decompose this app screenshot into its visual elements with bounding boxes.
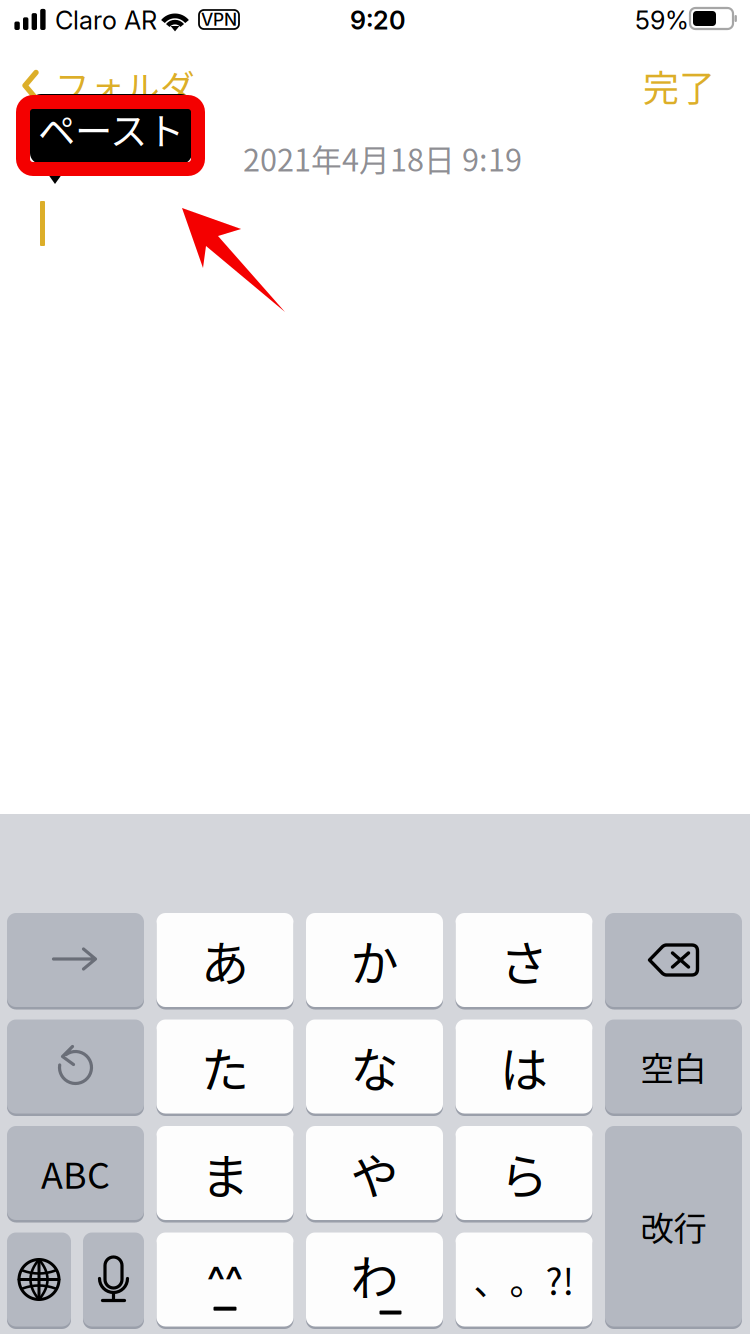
staticText: あ bbox=[201, 925, 249, 995]
staticText: フォルダ bbox=[55, 61, 195, 111]
button[interactable]: ^^ bbox=[156, 1232, 293, 1329]
button[interactable] bbox=[605, 913, 742, 1010]
staticText: さ bbox=[500, 925, 548, 995]
button[interactable]: 空白 bbox=[605, 1019, 742, 1116]
staticText: 空白 bbox=[640, 1042, 706, 1091]
button[interactable]: あ bbox=[156, 913, 293, 1010]
staticText: か bbox=[350, 925, 398, 995]
button[interactable]: な bbox=[306, 1019, 443, 1116]
button[interactable]: や bbox=[306, 1126, 443, 1223]
button[interactable]: ABC bbox=[7, 1126, 144, 1223]
staticText: ペースト bbox=[38, 102, 184, 156]
staticText: 9:20 bbox=[350, 5, 406, 36]
staticText: Claro AR bbox=[55, 5, 157, 36]
staticText: な bbox=[350, 1032, 398, 1101]
button[interactable] bbox=[7, 913, 144, 1010]
staticText: 改行 bbox=[640, 1202, 706, 1250]
staticText: は bbox=[500, 1032, 548, 1101]
button[interactable]: 改行 bbox=[605, 1126, 742, 1329]
button[interactable]: 、。?! bbox=[455, 1232, 592, 1329]
button[interactable] bbox=[7, 1019, 144, 1116]
button[interactable]: ら bbox=[455, 1126, 592, 1223]
staticText: VPN bbox=[201, 9, 237, 30]
button[interactable] bbox=[7, 1232, 71, 1329]
staticText: や bbox=[350, 1138, 398, 1208]
button[interactable]: ま bbox=[156, 1126, 293, 1223]
staticText: 59% bbox=[635, 5, 689, 36]
button[interactable]: は bbox=[455, 1019, 592, 1116]
staticText: 2021年4月18日 9:19 bbox=[243, 136, 522, 180]
button[interactable]: さ bbox=[455, 913, 592, 1010]
button[interactable]: ペースト bbox=[30, 94, 192, 164]
staticText: ABC bbox=[41, 1147, 110, 1199]
button[interactable]: フォルダ bbox=[0, 53, 195, 119]
staticText: 、。?! bbox=[473, 1253, 574, 1305]
button[interactable]: 完了 bbox=[643, 52, 750, 120]
staticText: ま bbox=[201, 1138, 249, 1208]
button[interactable]: た bbox=[156, 1019, 293, 1116]
button[interactable] bbox=[83, 1232, 144, 1329]
staticText: ら bbox=[500, 1138, 548, 1208]
staticText: た bbox=[201, 1032, 249, 1101]
staticText: わ bbox=[350, 1240, 398, 1309]
button[interactable]: わ bbox=[306, 1232, 443, 1329]
button[interactable]: か bbox=[306, 913, 443, 1010]
staticText: 完了 bbox=[643, 60, 715, 112]
staticText: ^^ bbox=[207, 1256, 243, 1305]
